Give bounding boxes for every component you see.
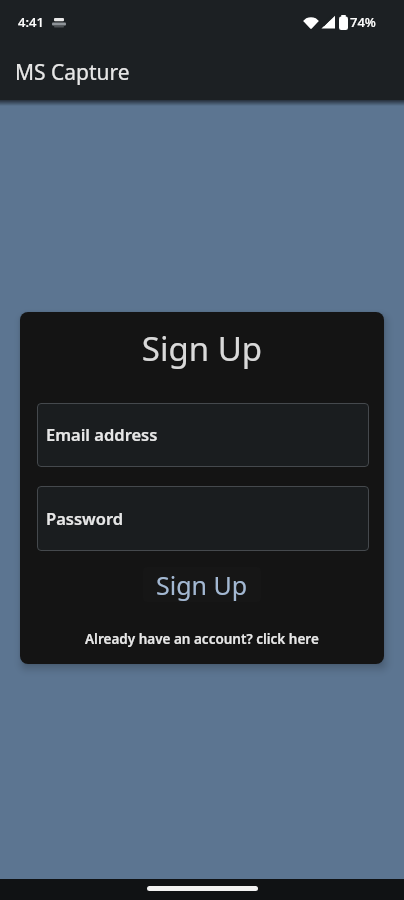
- staticText: Sign Up: [20, 326, 384, 371]
- staticText: 74%: [350, 13, 376, 31]
- staticText: Sign Up: [156, 568, 248, 602]
- button[interactable]: Password: [37, 486, 369, 551]
- button[interactable]: Sign Up: [143, 567, 261, 602]
- staticText: Email address: [46, 423, 158, 445]
- staticText: 4:41: [18, 13, 44, 31]
- button[interactable]: Already have an account? click here: [20, 625, 384, 653]
- staticText: Already have an account? click here: [85, 630, 319, 648]
- staticText: Password: [46, 507, 124, 529]
- staticText: MS Capture: [15, 58, 130, 87]
- button[interactable]: Email address: [37, 403, 369, 467]
